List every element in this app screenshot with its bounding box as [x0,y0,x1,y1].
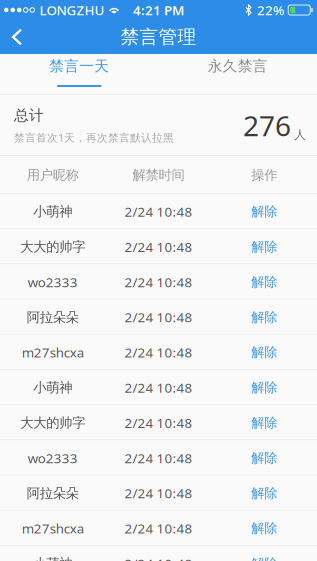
staticText: 解除 [251,344,277,361]
staticText: 用户昵称 [27,167,79,183]
staticText: 大大的帅字 [20,239,85,255]
staticText: 2/24 10:48 [124,273,192,291]
button[interactable]: 解除 [211,194,317,229]
button[interactable]: 解除 [211,440,317,476]
staticText: 解除 [251,450,277,466]
staticText: 永久禁言 [208,57,268,75]
staticText: 解除 [251,485,277,501]
staticText: 人 [294,127,306,142]
staticText: 2/24 10:48 [124,238,192,256]
staticText: 解除 [251,520,277,537]
button[interactable]: 永久禁言 [158,54,317,95]
staticText: 2/24 10:48 [124,414,192,432]
staticText: 2/24 10:48 [124,203,192,220]
staticText: 解除 [251,415,277,431]
staticText: 解除 [251,379,277,396]
button[interactable]: 解除 [211,264,317,300]
staticText: 解除 [251,239,277,255]
staticText: 解除 [251,203,277,220]
staticText: 操作 [251,167,277,183]
staticText: 2/24 10:48 [124,379,192,396]
staticText: 22% [257,1,284,19]
button[interactable]: 解除 [211,370,317,405]
staticText: 4:21 PM [133,1,184,19]
staticText: 禁言管理 [120,25,196,48]
button[interactable]: 解除 [211,476,317,511]
staticText: 解禁时间 [132,167,184,183]
staticText: m27shcxa [22,519,84,537]
staticText: 2/24 10:48 [124,555,192,561]
staticText: 总计 [14,106,44,124]
staticText: 禁言首次1天，再次禁言默认拉黑 [14,130,174,145]
staticText: 解除 [251,555,277,561]
staticText: LONGZHU [39,1,104,19]
staticText: 2/24 10:48 [124,449,192,467]
staticText: 2/24 10:48 [124,519,192,537]
staticText: 2/24 10:48 [124,308,192,326]
staticText: 小萌神 [33,203,72,220]
staticText: 解除 [251,309,277,325]
staticText: wo2333 [28,273,78,291]
button[interactable]: 禁言一天 [0,54,158,95]
staticText: 解除 [251,274,277,290]
button[interactable]: 解除 [211,335,317,370]
staticText: 276 [243,107,291,144]
button[interactable]: 解除 [211,300,317,335]
staticText: 大大的帅字 [20,415,85,431]
staticText: 阿拉朵朵 [27,485,79,501]
staticText: 2/24 10:48 [124,343,192,361]
button[interactable]: 解除 [211,546,317,561]
button[interactable]: Back [0,20,34,54]
staticText: 小萌神 [33,555,72,561]
staticText: wo2333 [28,449,78,467]
staticText: 2/24 10:48 [124,484,192,502]
staticText: 阿拉朵朵 [27,309,79,325]
button[interactable]: 解除 [211,405,317,440]
staticText: 小萌神 [33,379,72,396]
staticText: m27shcxa [22,343,84,361]
staticText: 禁言一天 [49,57,109,75]
button[interactable]: 解除 [211,511,317,546]
button[interactable]: 解除 [211,229,317,264]
